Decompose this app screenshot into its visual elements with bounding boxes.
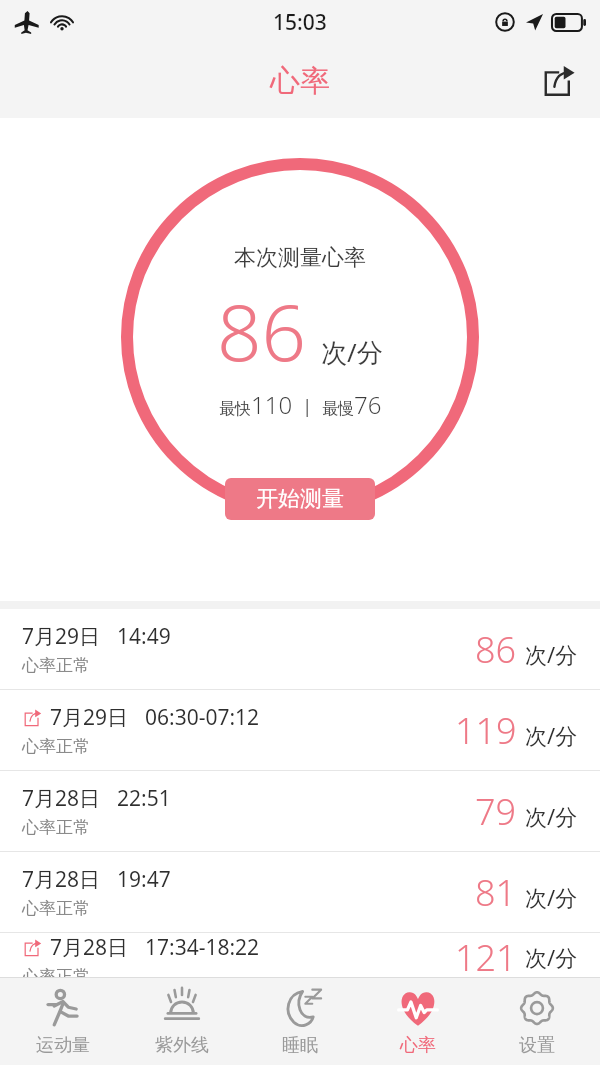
- staticText: 次/分: [525, 882, 578, 912]
- staticText: 121: [455, 933, 517, 977]
- staticText: 86: [217, 278, 307, 384]
- staticText: 76: [354, 388, 382, 421]
- button[interactable]: 7月28日: [0, 771, 600, 851]
- staticText: 次/分: [525, 801, 578, 831]
- button[interactable]: 7月29日: [0, 609, 600, 689]
- staticText: 14:49: [117, 622, 171, 651]
- staticText: 设置: [519, 1034, 555, 1057]
- staticText: 心率正常: [22, 736, 90, 757]
- staticText: 紫外线: [155, 1034, 209, 1057]
- button[interactable]: Share: [530, 53, 586, 109]
- staticText: 最慢: [322, 399, 354, 419]
- staticText: 心率: [270, 62, 330, 100]
- button[interactable]: 设置: [482, 981, 592, 1063]
- staticText: 本次测量心率: [234, 244, 366, 272]
- staticText: 心率: [400, 1034, 436, 1057]
- staticText: 开始测量: [256, 485, 344, 513]
- staticText: 睡眠: [282, 1034, 318, 1057]
- staticText: 心率正常: [22, 655, 90, 676]
- staticText: 最快: [219, 399, 251, 419]
- staticText: 运动量: [36, 1034, 90, 1057]
- button[interactable]: 开始测量: [225, 478, 375, 520]
- button[interactable]: 紫外线: [127, 981, 237, 1063]
- staticText: 110: [251, 388, 293, 421]
- staticText: 79: [475, 787, 517, 836]
- staticText: |: [293, 394, 322, 419]
- staticText: 次/分: [321, 334, 383, 370]
- staticText: 次/分: [525, 942, 578, 972]
- staticText: 7月29日: [22, 622, 101, 651]
- staticText: 心率正常: [22, 898, 90, 919]
- staticText: 17:34-18:22: [145, 933, 260, 962]
- staticText: 22:51: [117, 784, 171, 813]
- staticText: 7月28日: [22, 865, 101, 894]
- staticText: 次/分: [525, 720, 578, 750]
- button[interactable]: 7月29日: [0, 690, 600, 770]
- staticText: 次/分: [525, 639, 578, 669]
- staticText: 81: [475, 868, 517, 917]
- staticText: 06:30-07:12: [145, 703, 260, 732]
- staticText: 15:03: [273, 8, 327, 37]
- staticText: 7月28日: [22, 784, 101, 813]
- staticText: 7月29日: [50, 703, 129, 732]
- staticText: 86: [475, 625, 517, 674]
- button[interactable]: 7月28日: [0, 933, 600, 977]
- staticText: 119: [455, 706, 517, 755]
- button[interactable]: 心率: [363, 981, 473, 1063]
- staticText: 7月28日: [50, 933, 129, 962]
- staticText: 心率正常: [22, 817, 90, 838]
- staticText: 心率正常: [22, 966, 90, 977]
- button[interactable]: 运动量: [8, 981, 118, 1063]
- button[interactable]: 7月28日: [0, 852, 600, 932]
- staticText: 19:47: [117, 865, 171, 894]
- button[interactable]: 睡眠: [245, 981, 355, 1063]
